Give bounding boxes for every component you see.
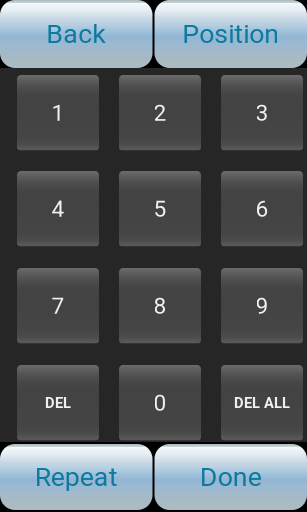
button[interactable]: 2: [119, 75, 201, 151]
staticText: Position: [182, 18, 279, 50]
button[interactable]: 8: [119, 268, 201, 344]
staticText: 4: [51, 196, 64, 222]
button[interactable]: Back: [0, 0, 152, 68]
staticText: 8: [153, 293, 166, 319]
staticText: DEL ALL: [234, 394, 290, 412]
button[interactable]: 9: [221, 268, 303, 344]
staticText: 3: [255, 100, 268, 126]
staticText: 5: [153, 196, 166, 222]
staticText: Back: [46, 18, 106, 50]
button[interactable]: 5: [119, 171, 201, 247]
button[interactable]: 4: [17, 171, 99, 247]
button[interactable]: 7: [17, 268, 99, 344]
button[interactable]: 3: [221, 75, 303, 151]
staticText: 0: [153, 390, 166, 416]
button[interactable]: 6: [221, 171, 303, 247]
staticText: 9: [255, 293, 268, 319]
button[interactable]: 0: [119, 365, 201, 441]
button[interactable]: DEL: [17, 365, 99, 441]
staticText: Done: [200, 461, 262, 493]
staticText: 7: [51, 293, 64, 319]
button[interactable]: Done: [154, 444, 307, 510]
button[interactable]: Position: [154, 0, 307, 68]
staticText: 2: [153, 100, 166, 126]
button[interactable]: 1: [17, 75, 99, 151]
staticText: 1: [51, 100, 64, 126]
button[interactable]: DEL ALL: [221, 365, 303, 441]
staticText: 6: [255, 196, 268, 222]
staticText: Repeat: [35, 461, 118, 493]
staticText: DEL: [45, 394, 71, 412]
button[interactable]: Repeat: [0, 444, 152, 510]
